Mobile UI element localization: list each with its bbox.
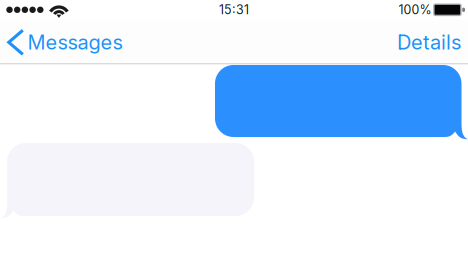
staticText: 15:31 [219,2,249,17]
button[interactable]: Details [397,22,468,61]
staticText: Details [397,30,461,54]
staticText: Messages [28,30,123,54]
staticText: 100% [399,2,432,17]
button[interactable]: Messages [0,20,123,62]
